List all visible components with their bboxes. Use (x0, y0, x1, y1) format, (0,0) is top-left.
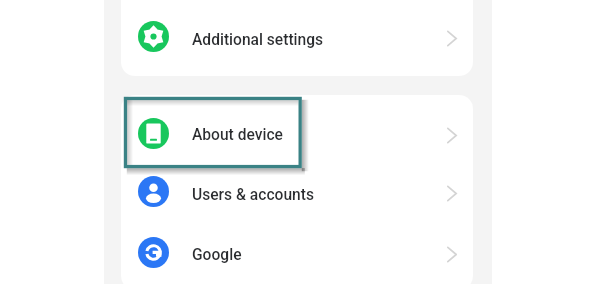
staticText: Google (192, 246, 242, 264)
staticText: About device (192, 126, 283, 144)
button[interactable]: Google (121, 223, 473, 282)
button[interactable]: About device (121, 104, 473, 163)
button[interactable]: Users & accounts (121, 162, 473, 221)
staticText: Additional settings (192, 31, 324, 49)
button[interactable]: Additional settings (121, 7, 473, 66)
staticText: Users & accounts (192, 186, 314, 204)
